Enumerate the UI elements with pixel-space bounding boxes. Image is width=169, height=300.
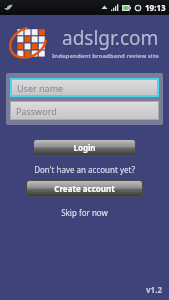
staticText: User name [17, 82, 64, 94]
staticText: v1.2 [146, 284, 162, 295]
other: Twitter notification [4, 3, 13, 12]
button[interactable]: Login [34, 140, 135, 155]
staticText: Independent broadband review site [52, 52, 159, 60]
button[interactable]: Create account [27, 181, 142, 196]
staticText: Create account [54, 183, 115, 194]
staticText: Login [73, 142, 96, 153]
staticText: Don't have an account yet? [0, 164, 169, 175]
button[interactable]: User name [12, 80, 157, 95]
staticText: Password [16, 105, 57, 117]
staticText: Skip for now [61, 207, 108, 218]
staticText: adslgr.com [62, 25, 159, 51]
button[interactable]: Skip for now [0, 207, 169, 218]
staticText: 19:13 [145, 2, 166, 13]
button[interactable]: Password [11, 102, 158, 119]
